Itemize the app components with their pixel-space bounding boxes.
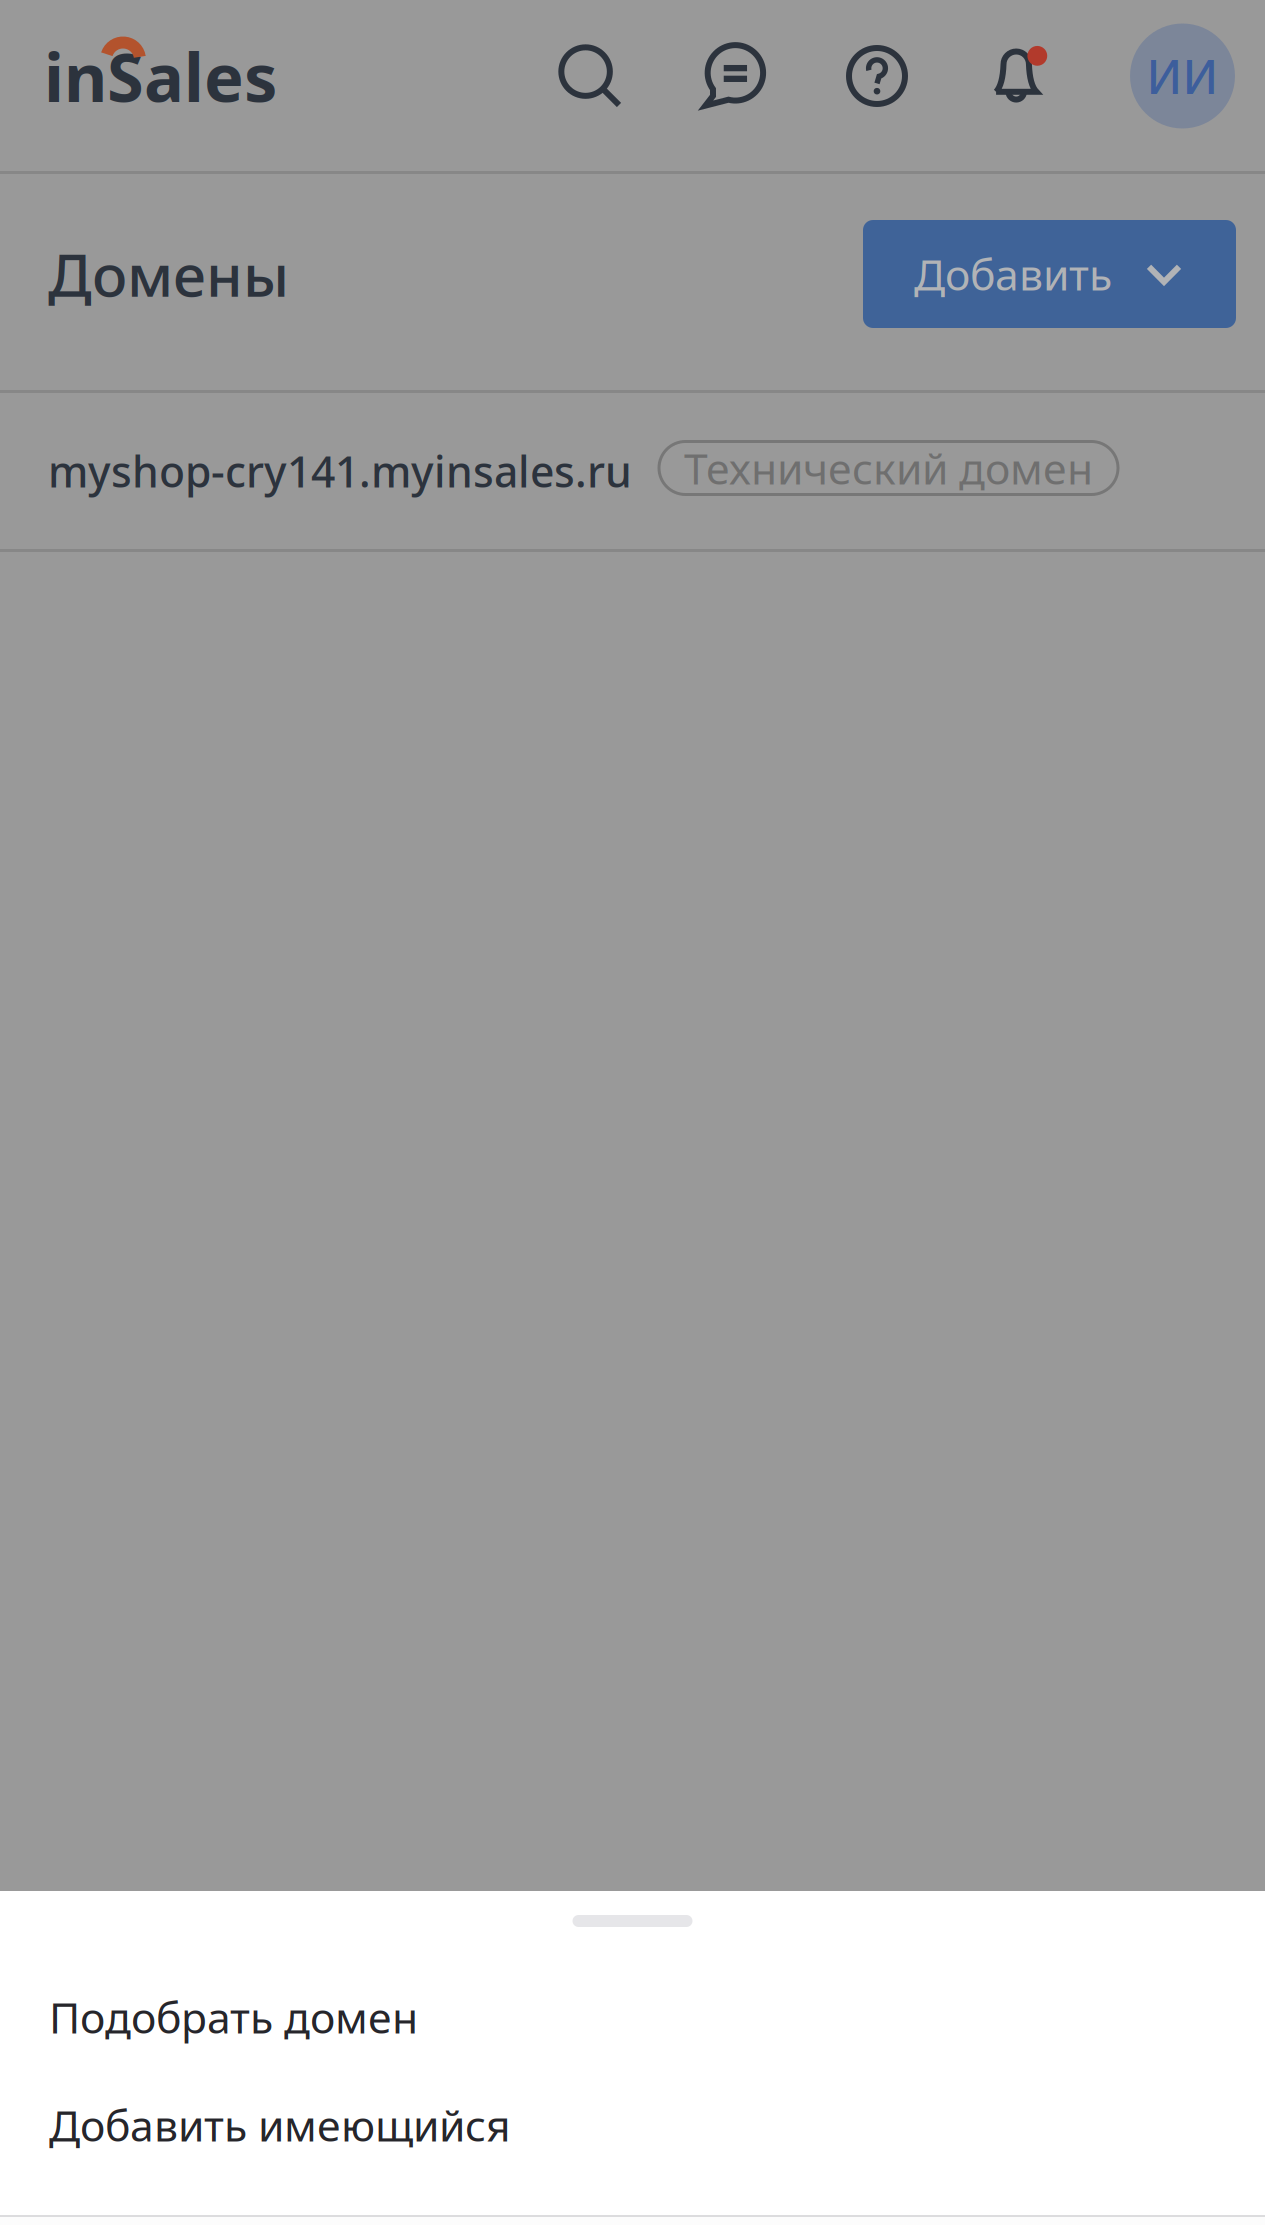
button[interactable]: Help — [805, 22, 949, 130]
staticText: Добавить имеющийся — [49, 2096, 511, 2154]
button[interactable]: Search — [518, 22, 662, 130]
staticText: Добавить — [914, 245, 1112, 303]
staticText: Подобрать домен — [49, 1988, 418, 2046]
button[interactable]: inSales home — [0, 30, 290, 121]
button[interactable]: Добавить — [863, 220, 1236, 328]
button[interactable]: Account — [1094, 23, 1265, 128]
staticText: Домены — [48, 234, 289, 314]
button[interactable]: Добавить имеющийся — [0, 2071, 1265, 2179]
staticText: ИИ — [1146, 44, 1218, 108]
button[interactable]: Подобрать домен — [0, 1963, 1265, 2071]
staticText: myshop-cry141.myinsales.ru — [48, 442, 632, 500]
staticText: Технический домен — [684, 439, 1093, 497]
staticText: inSales — [44, 31, 277, 121]
button[interactable]: Messages — [662, 22, 805, 130]
button[interactable]: Notifications — [949, 22, 1094, 130]
